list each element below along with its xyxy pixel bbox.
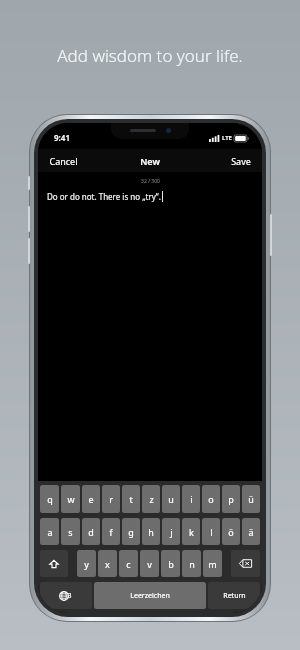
- button[interactable]: d: [82, 518, 100, 545]
- button[interactable]: b: [161, 550, 180, 577]
- button[interactable]: n: [182, 550, 201, 577]
- staticText: ä: [248, 526, 254, 538]
- staticText: d: [88, 526, 94, 538]
- button[interactable]: Switch keyboard: [40, 582, 92, 609]
- staticText: f: [109, 526, 113, 538]
- staticText: b: [168, 558, 174, 570]
- button[interactable]: Save: [220, 151, 262, 171]
- button[interactable]: l: [202, 518, 220, 545]
- button[interactable]: ä: [242, 518, 260, 545]
- staticText: LTE: [222, 134, 232, 142]
- staticText: c: [126, 558, 131, 570]
- button[interactable]: t: [122, 485, 140, 513]
- button[interactable]: j: [162, 518, 180, 545]
- staticText: k: [189, 526, 194, 538]
- button[interactable]: e: [82, 485, 100, 513]
- button[interactable]: ö: [222, 518, 240, 545]
- staticText: y: [84, 558, 89, 570]
- button[interactable]: u: [162, 485, 180, 513]
- staticText: 9:41: [54, 132, 70, 143]
- staticText: a: [47, 526, 53, 538]
- staticText: 32 / 300: [141, 178, 160, 185]
- button[interactable]: v: [140, 550, 159, 577]
- button[interactable]: m: [203, 550, 222, 577]
- button[interactable]: g: [122, 518, 140, 545]
- staticText: q: [47, 493, 53, 505]
- staticText: x: [105, 558, 110, 570]
- staticText: Save: [231, 155, 251, 167]
- staticText: v: [147, 558, 152, 570]
- button[interactable]: Cancel: [38, 151, 89, 171]
- staticText: Return: [223, 591, 246, 601]
- staticText: i: [190, 493, 193, 505]
- staticText: Leerzeichen: [130, 591, 170, 601]
- staticText: j: [170, 526, 173, 538]
- staticText: z: [149, 493, 154, 505]
- staticText: n: [189, 558, 195, 570]
- staticText: r: [109, 493, 113, 505]
- button[interactable]: r: [102, 485, 120, 513]
- button[interactable]: h: [142, 518, 160, 545]
- staticText: New: [140, 155, 160, 167]
- button[interactable]: k: [182, 518, 200, 545]
- button[interactable]: w: [61, 485, 80, 513]
- staticText: p: [228, 493, 234, 505]
- button[interactable]: y: [77, 550, 96, 577]
- button[interactable]: Return: [208, 582, 260, 609]
- staticText: h: [148, 526, 154, 538]
- staticText: l: [210, 526, 213, 538]
- button[interactable]: Backspace: [231, 550, 260, 577]
- staticText: o: [208, 493, 214, 505]
- staticText: u: [168, 493, 174, 505]
- button[interactable]: p: [222, 485, 240, 513]
- button[interactable]: Leerzeichen: [94, 582, 206, 609]
- button[interactable]: i: [182, 485, 200, 513]
- staticText: e: [88, 493, 94, 505]
- staticText: Cancel: [49, 155, 78, 167]
- button[interactable]: ü: [242, 485, 260, 513]
- staticText: ö: [228, 526, 234, 538]
- button[interactable]: o: [202, 485, 220, 513]
- staticText: Add wisdom to your life.: [57, 44, 243, 67]
- button[interactable]: q: [40, 485, 59, 513]
- staticText: m: [208, 558, 217, 570]
- button[interactable]: x: [98, 550, 117, 577]
- button[interactable]: z: [142, 485, 160, 513]
- staticText: g: [128, 526, 134, 538]
- staticText: ü: [248, 493, 254, 505]
- button[interactable]: Shift: [40, 550, 68, 577]
- staticText: t: [129, 493, 133, 505]
- staticText: 3: [67, 591, 72, 601]
- button[interactable]: a: [40, 518, 59, 545]
- staticText: w: [67, 493, 75, 505]
- staticText: Do or do not. There is no „try“.: [47, 191, 161, 202]
- button[interactable]: f: [102, 518, 120, 545]
- button[interactable]: s: [61, 518, 80, 545]
- staticText: s: [68, 526, 73, 538]
- button[interactable]: c: [119, 550, 138, 577]
